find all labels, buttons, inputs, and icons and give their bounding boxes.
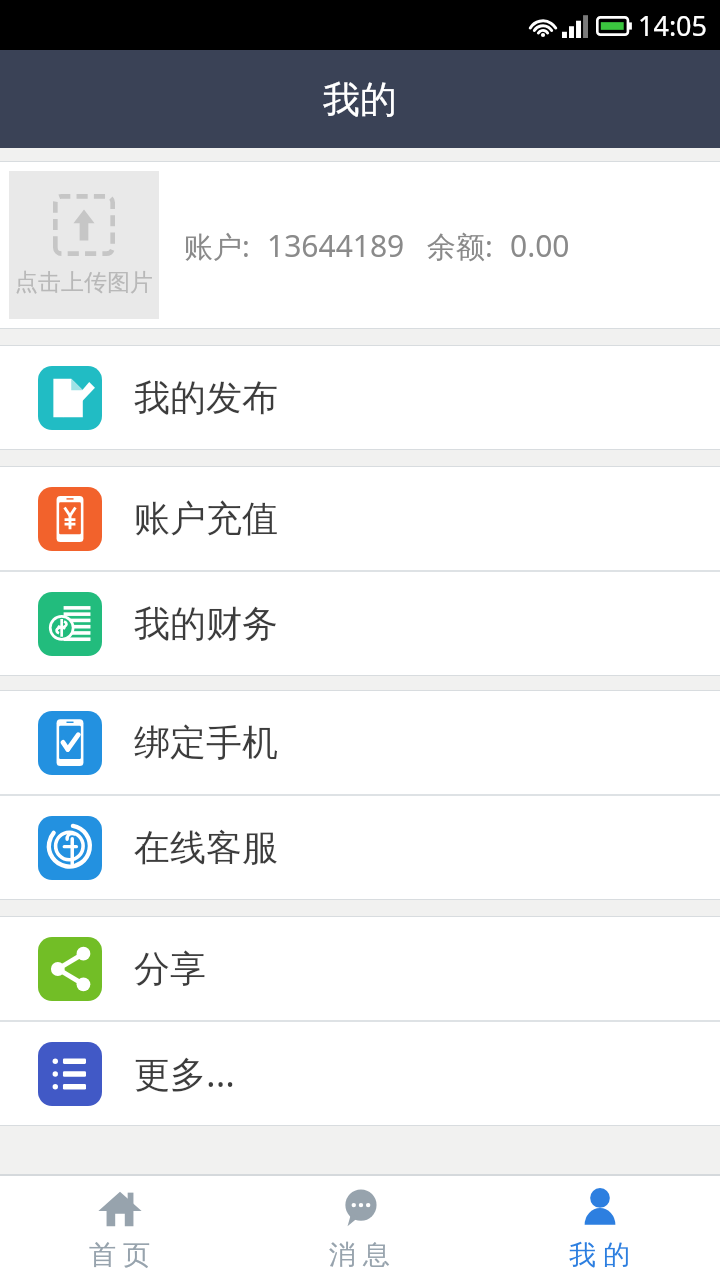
staticText: 消 息 [329,1235,391,1272]
staticText: 绑定手机 [134,720,278,765]
button[interactable]: 首页 [0,1176,240,1280]
staticText: 13644189 [267,225,405,266]
staticText: 我的财务 [134,601,278,646]
staticText: 首 页 [89,1235,151,1272]
staticText: 我的 [323,76,397,123]
staticText: 在线客服 [134,825,278,870]
staticText: 我 的 [569,1235,631,1272]
staticText: 账户: [184,226,250,266]
other: 我的 [576,1184,624,1232]
button[interactable]: 点击上传图片 [9,171,159,319]
other: 消息 [336,1184,384,1232]
staticText: 账户充值 [134,496,278,541]
button[interactable]: 更多... [0,1022,720,1125]
button[interactable]: 我的财务 [0,572,720,675]
button[interactable]: 绑定手机 [0,691,720,794]
staticText: 我的发布 [134,375,278,420]
staticText: 点击上传图片 [15,268,153,297]
other: 首页 [96,1184,144,1232]
button[interactable]: 我的 [480,1176,720,1280]
button[interactable]: 分享 [0,917,720,1020]
button[interactable]: 我的发布 [0,346,720,449]
button[interactable]: 账户充值 [0,467,720,570]
button[interactable]: 在线客服 [0,796,720,899]
staticText: 余额: [427,226,493,266]
staticText: 0.00 [510,225,570,266]
staticText: 分享 [134,946,206,991]
button[interactable]: 消息 [240,1176,480,1280]
staticText: 更多... [134,1049,235,1098]
staticText: 14:05 [638,7,708,44]
